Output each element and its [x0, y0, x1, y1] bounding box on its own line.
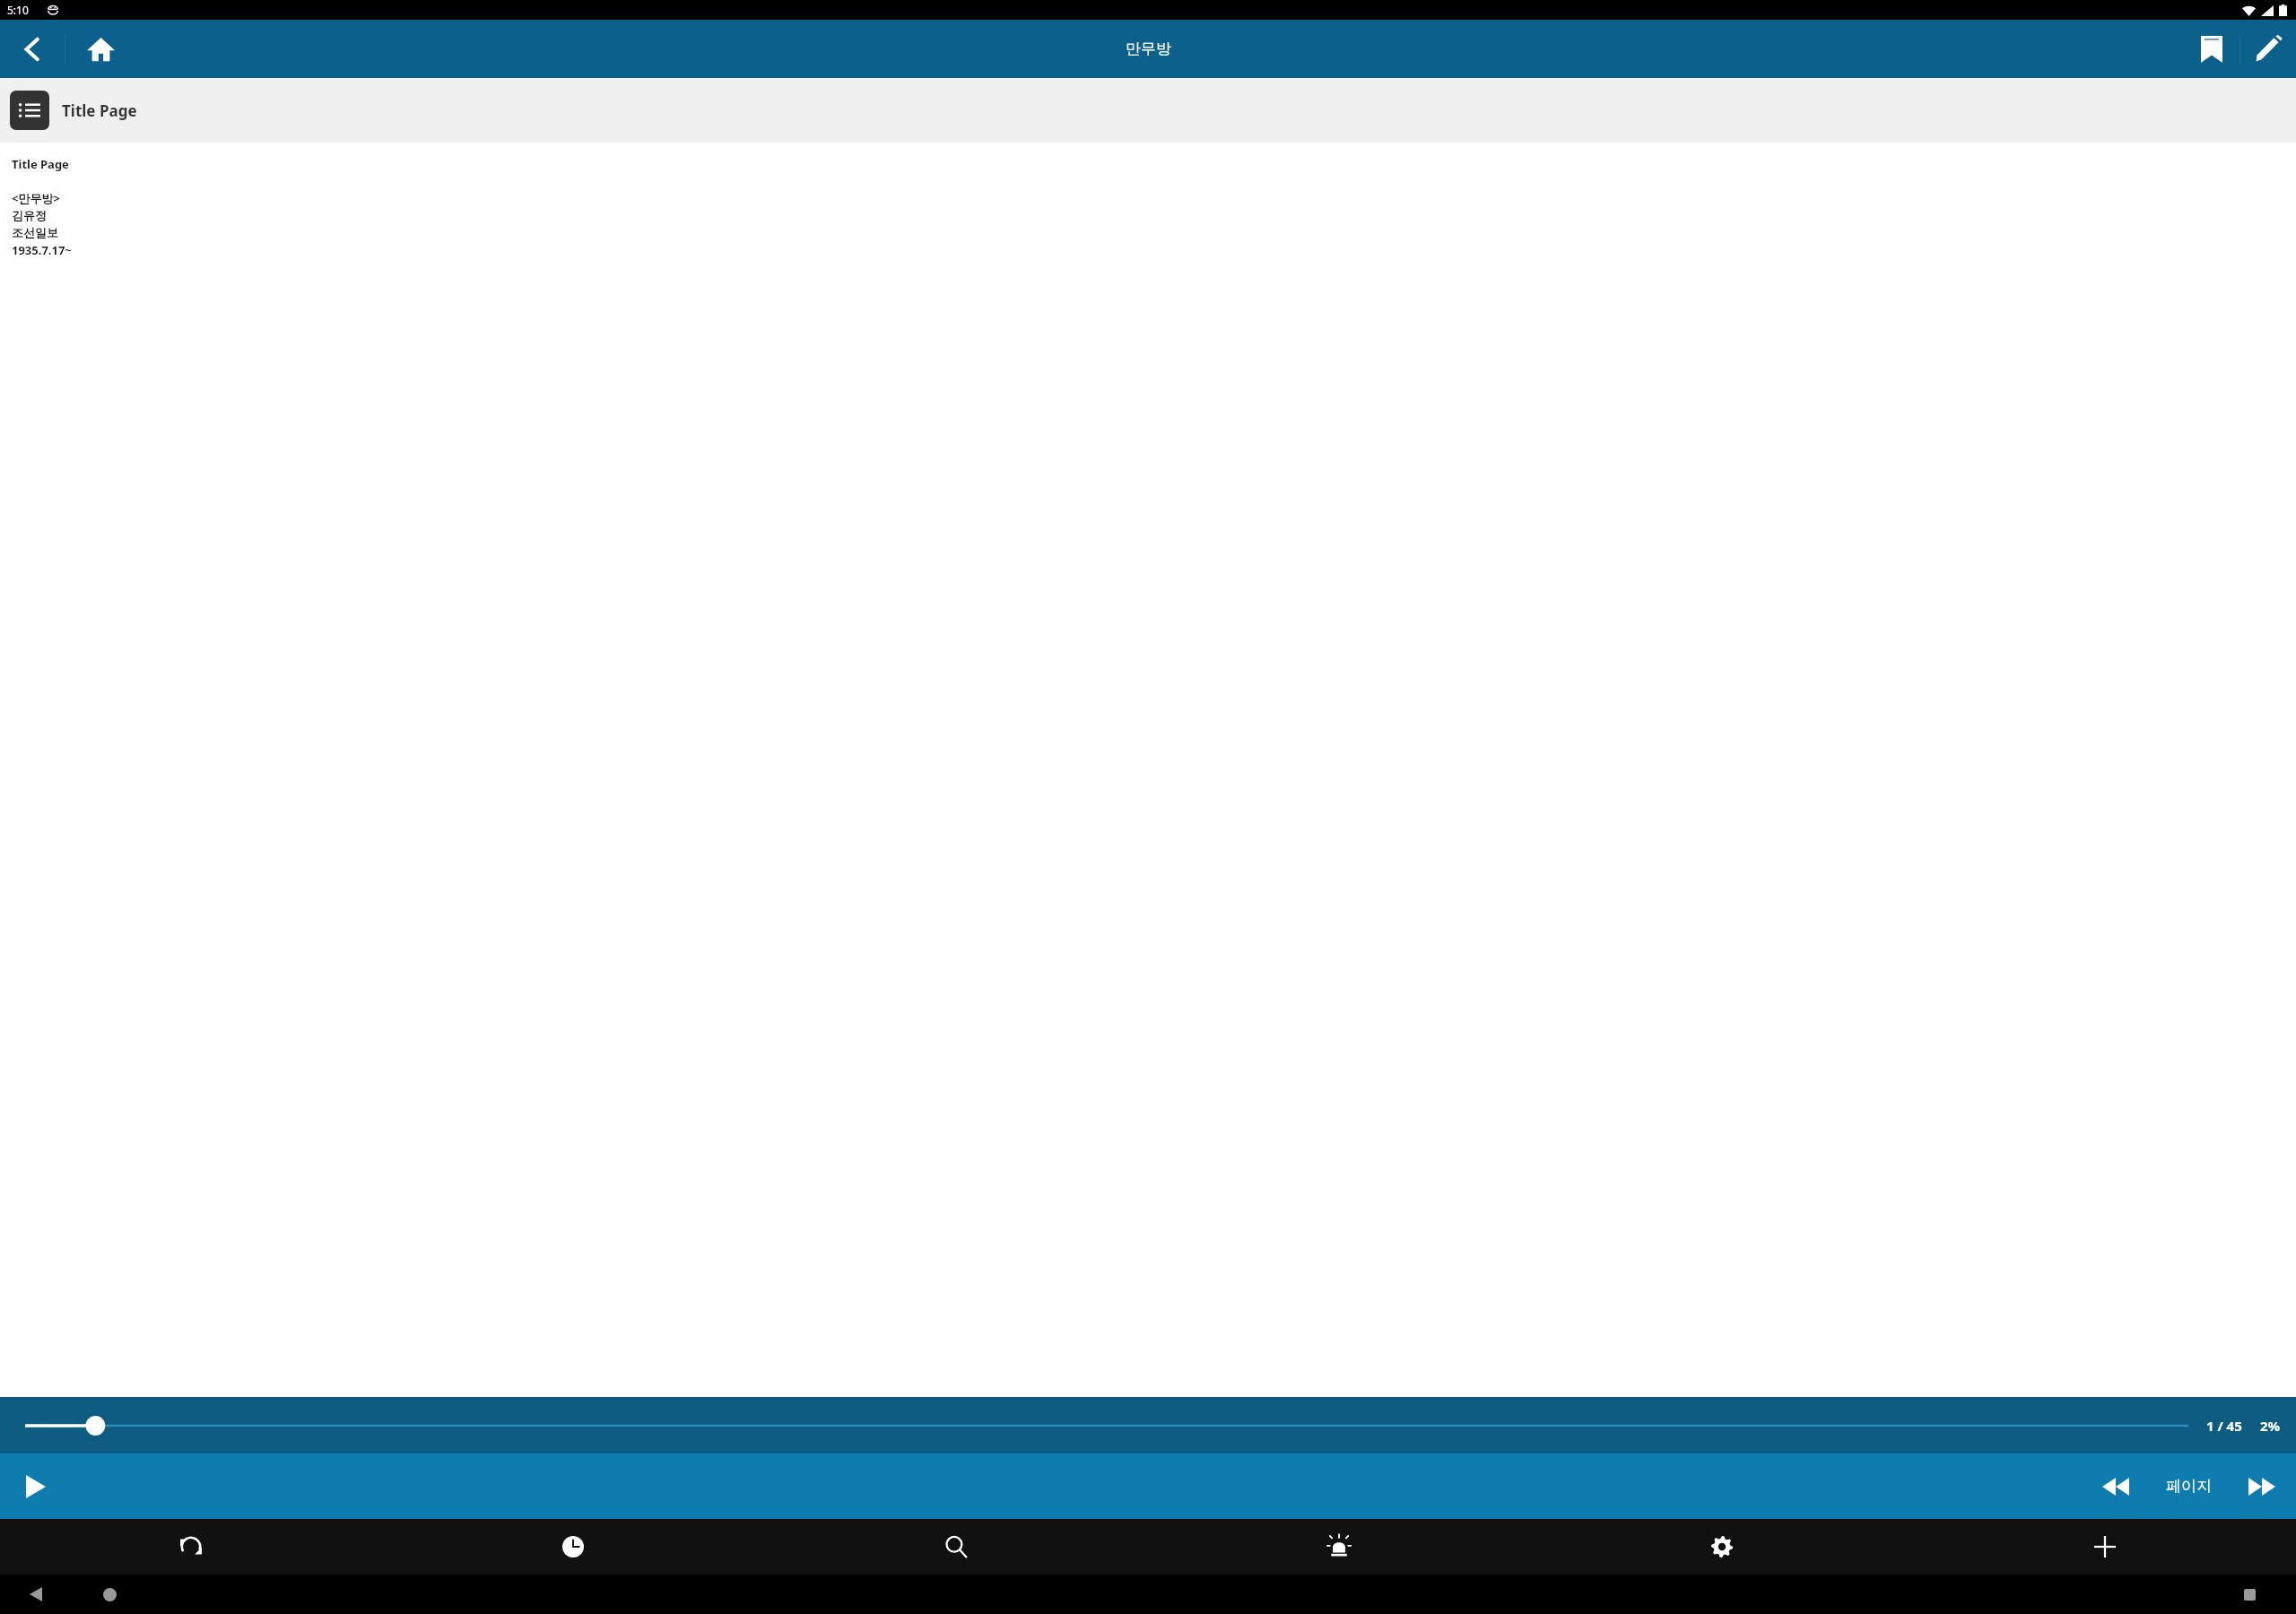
button[interactable]: [25, 1397, 2188, 1453]
staticText: Title Page: [12, 156, 69, 172]
staticText: Title Page: [62, 100, 137, 121]
staticText: 2%: [2260, 1417, 2281, 1435]
button[interactable]: Next: [2228, 1453, 2296, 1519]
staticText: 1 / 45: [2206, 1417, 2242, 1435]
button[interactable]: Clock: [382, 1519, 764, 1575]
button[interactable]: 페이지: [2150, 1453, 2228, 1519]
button[interactable]: Previous: [2082, 1453, 2150, 1519]
staticText: <만무방> 김유정 조선일보 1935.7.17~: [12, 190, 72, 258]
button[interactable]: Home: [65, 20, 135, 78]
staticText: 만무방: [1126, 39, 1171, 58]
button[interactable]: Edit: [2240, 20, 2296, 78]
button[interactable]: Title Page: [10, 78, 137, 143]
button[interactable]: Refresh: [0, 1519, 382, 1575]
button[interactable]: Back: [16, 1575, 56, 1614]
button[interactable]: Play: [0, 1453, 72, 1519]
button[interactable]: Search: [764, 1519, 1147, 1575]
staticText: 페이지: [2166, 1477, 2212, 1496]
button[interactable]: Home: [90, 1575, 129, 1614]
button[interactable]: Bookmark: [2184, 20, 2239, 78]
staticText: 5:10: [7, 3, 29, 17]
button[interactable]: Settings: [1530, 1519, 1913, 1575]
button[interactable]: Alert: [1147, 1519, 1530, 1575]
button[interactable]: Recents: [2230, 1575, 2269, 1614]
button[interactable]: Back: [0, 20, 65, 78]
button[interactable]: Add: [1913, 1519, 2296, 1575]
